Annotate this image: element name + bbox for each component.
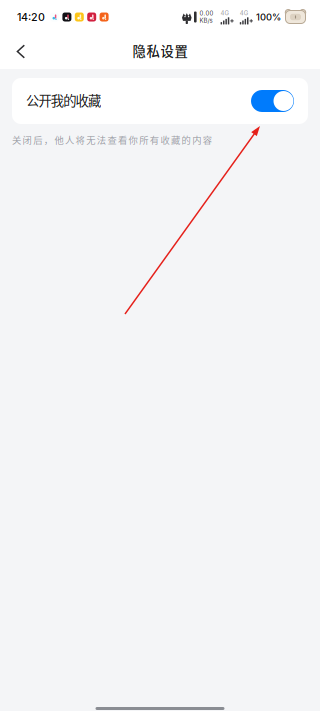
staticText: 0.00 (200, 10, 214, 17)
button[interactable]: Back (0, 34, 42, 69)
button[interactable]: 公开我的收藏 (12, 78, 308, 124)
staticText: 公开我的收藏 (26, 90, 101, 110)
staticText: 隐私设置 (132, 41, 187, 60)
staticText: 100% (256, 11, 281, 23)
staticText: 4G (240, 9, 248, 17)
staticText: 4G (221, 9, 229, 17)
staticText: 14:20 (17, 10, 45, 23)
staticText: KB/s (200, 17, 213, 24)
staticText: 关闭后，他人将无法查看你所有收藏的内容 (12, 133, 212, 146)
